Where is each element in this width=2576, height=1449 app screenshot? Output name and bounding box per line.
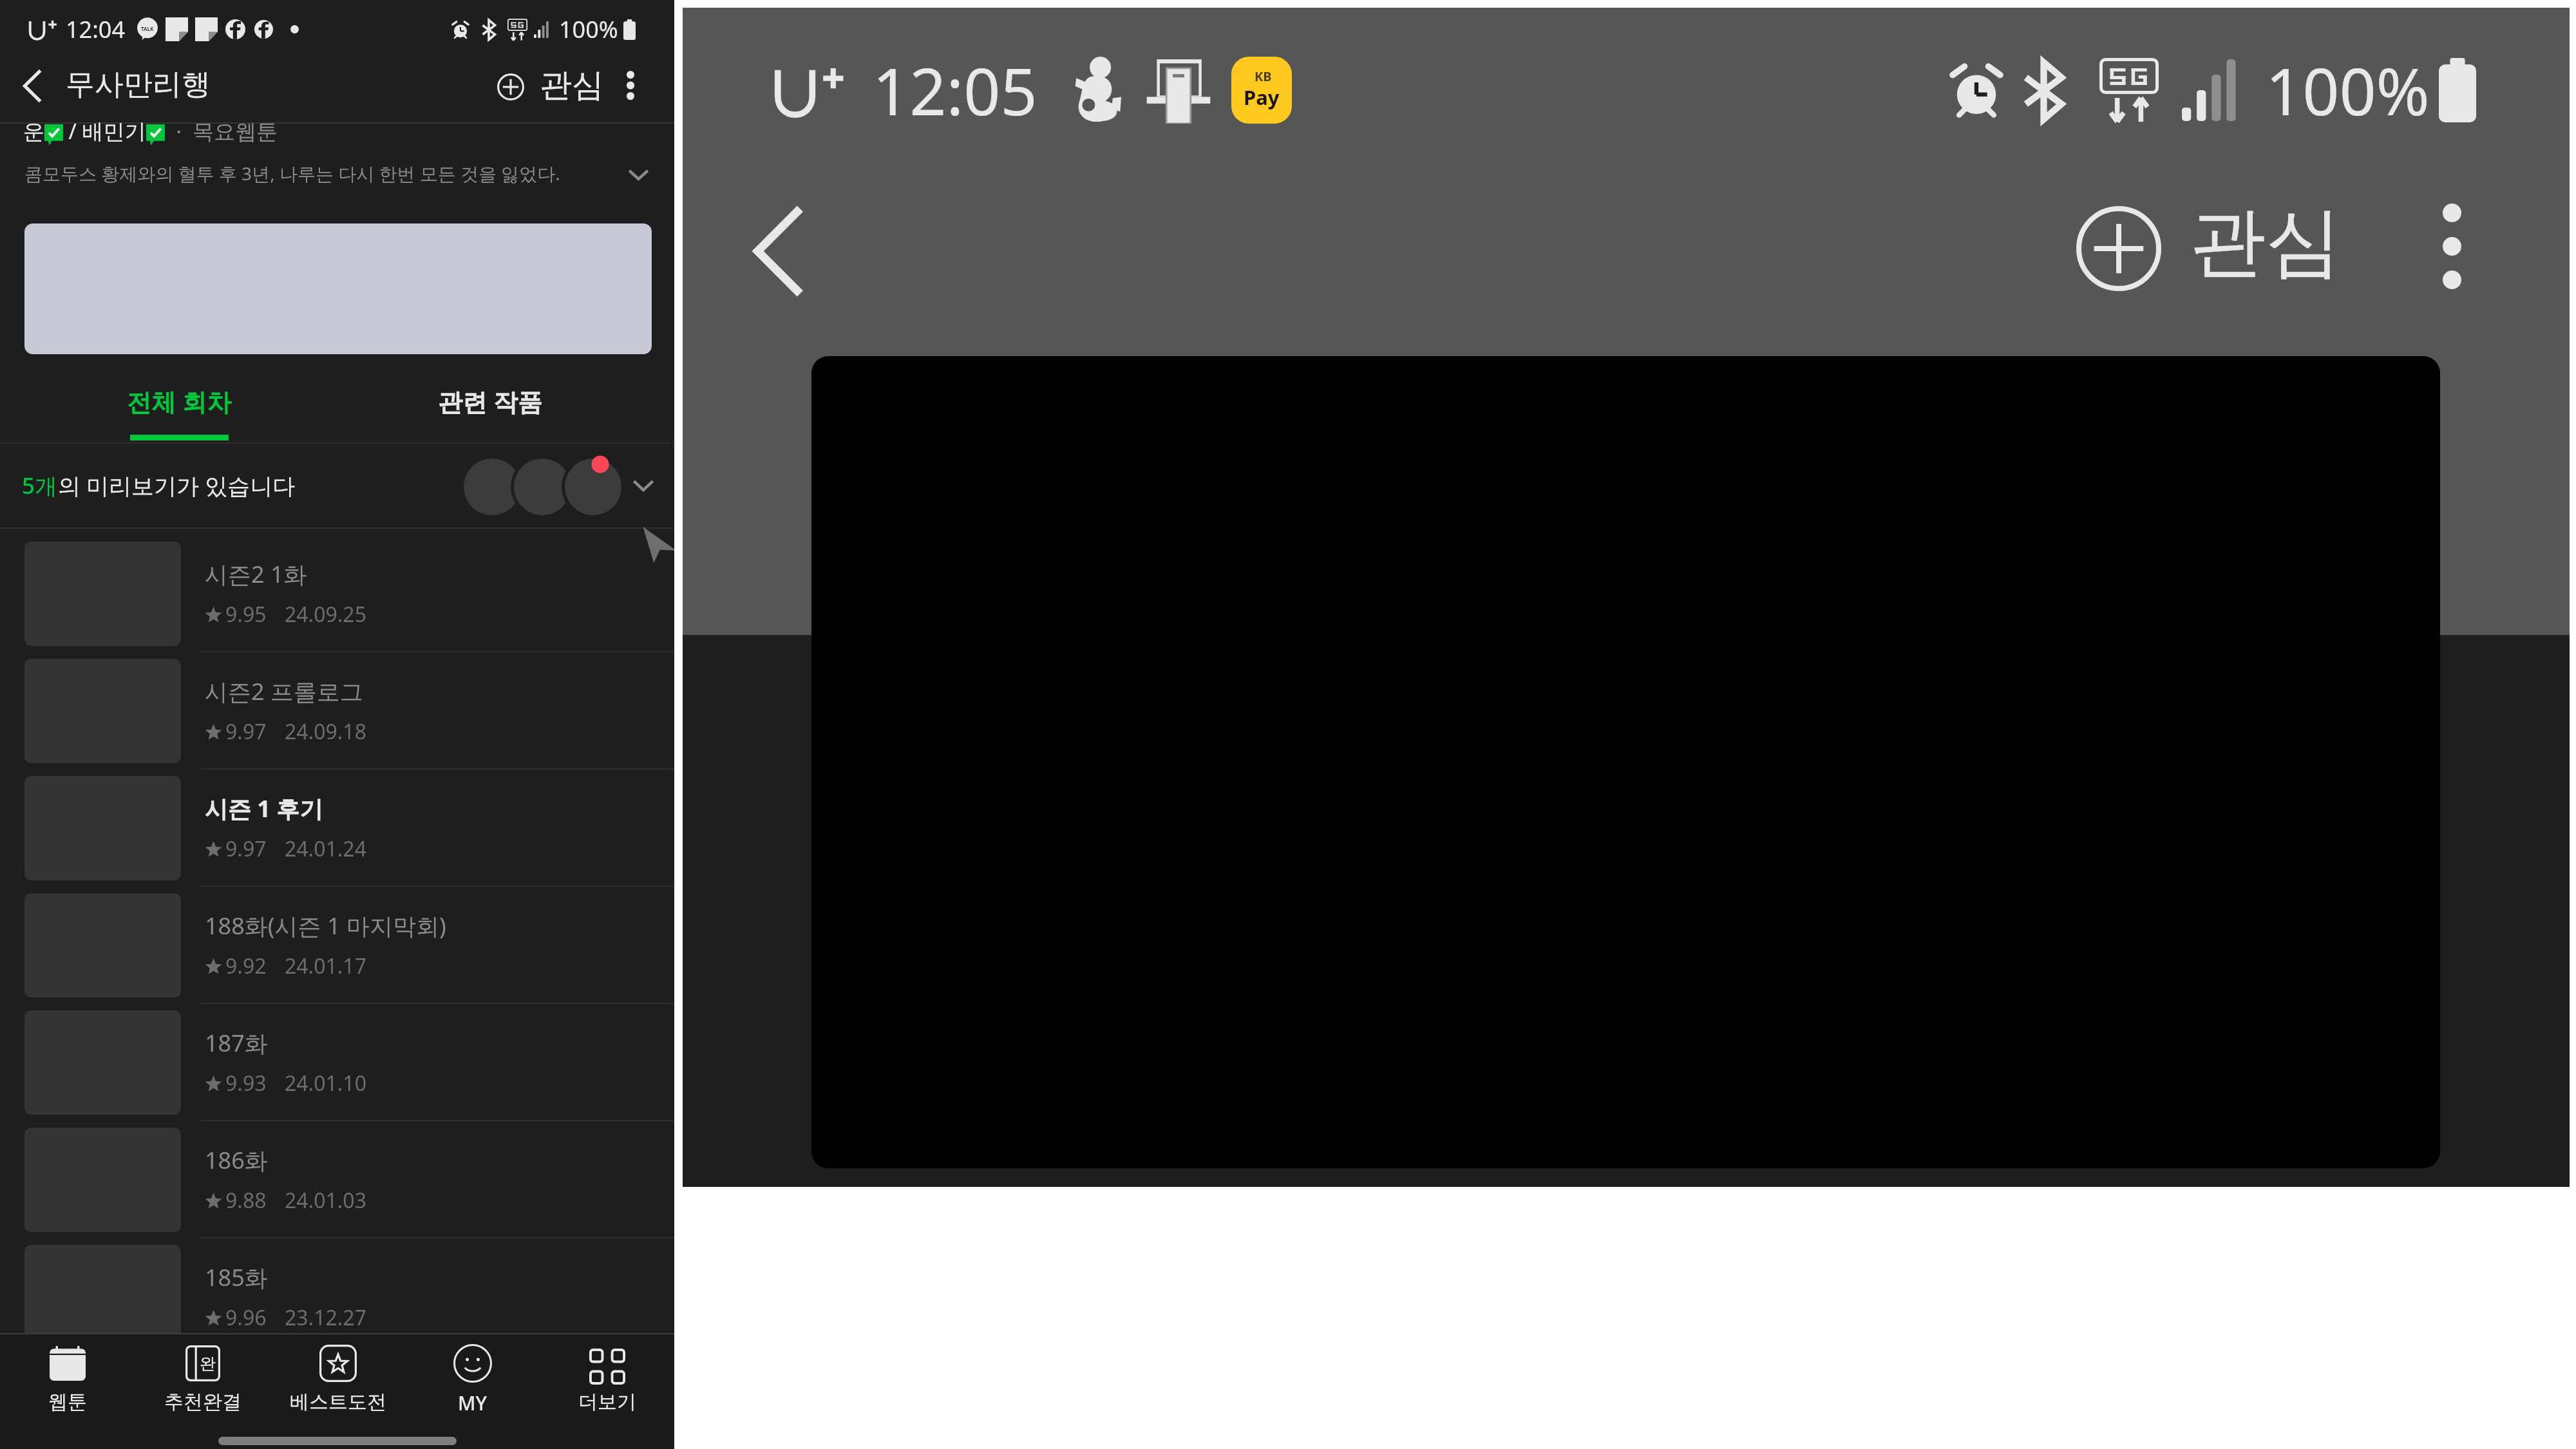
button[interactable]: 관심 [487,61,614,119]
staticText: TALK [141,25,154,32]
staticText: 관심 [540,65,604,106]
button[interactable]: 186화 [0,1121,674,1238]
button[interactable]: 시즌2 1화 [0,535,674,652]
button[interactable]: 185화 [0,1238,674,1356]
staticText: 188화(시즌 1 마지막회) [205,910,446,942]
staticText: 23.12.27 [285,1303,366,1332]
staticText: 9.92 [225,952,267,980]
button[interactable]: Back [705,177,853,325]
staticText: 186화 [205,1144,268,1176]
button[interactable]: 완 [135,1343,270,1414]
staticText: 운 [23,118,44,146]
staticText: 24.01.17 [285,952,366,980]
button[interactable]: 188화(시즌 1 마지막회) [0,887,674,1004]
staticText: 12:05 [873,46,1037,134]
staticText: 전체 회차 [127,384,231,418]
staticText: 5개 [22,470,58,501]
staticText: MY [458,1390,488,1416]
button[interactable]: More options [607,52,654,118]
staticText: 24.01.24 [285,835,366,863]
staticText: 9.97 [225,717,267,746]
staticText: 관심 [2190,194,2342,290]
staticText: 무사만리행 [66,66,211,103]
button[interactable]: Promotion banner [24,223,652,354]
staticText: 콤모두스 황제와의 혈투 후 3년, 나루는 다시 한번 모든 것을 잃었다. [24,161,560,185]
staticText: 187화 [205,1027,268,1059]
staticText: 시즌 1 후기 [205,793,323,824]
staticText: 9.97 [225,835,267,863]
button[interactable]: 시즌 1 후기 [0,770,674,887]
button[interactable]: Expand description [611,147,665,202]
button[interactable]: 더보기 [540,1343,674,1414]
staticText: 100% [2266,46,2430,134]
staticText: 더보기 [578,1390,636,1414]
staticText: / 배민기 [63,117,146,146]
staticText: 9.88 [225,1186,267,1215]
staticText: 9.95 [225,600,267,629]
staticText: 완 [200,1354,216,1374]
staticText: 웹툰 [48,1390,87,1414]
button[interactable]: 187화 [0,1004,674,1121]
button[interactable]: 웹툰 [0,1343,135,1414]
staticText: 185화 [205,1262,268,1293]
staticText: 시즌2 프롤로그 [205,676,363,707]
staticText: 의 미리보기가 있습니다 [58,470,296,501]
staticText: 24.01.03 [285,1186,366,1215]
staticText: 시즌2 1화 [205,558,307,590]
staticText: 12:04 [66,14,126,45]
staticText: 100% [559,14,618,45]
button[interactable]: 관심 [2048,180,2409,317]
staticText: 9.96 [225,1303,267,1332]
button[interactable]: 베스트도전 [270,1343,405,1414]
staticText: 9.93 [225,1069,267,1097]
staticText: 추천완결 [164,1390,241,1414]
button[interactable]: Back [3,53,62,118]
staticText: Pay [1244,84,1280,111]
staticText: 24.09.18 [285,717,366,746]
staticText: KB [1255,68,1272,85]
staticText: 베스트도전 [290,1390,386,1414]
staticText: · 목요웹툰 [165,117,278,146]
button[interactable]: MY [405,1343,540,1416]
button[interactable]: 5개 [0,444,674,527]
button[interactable]: More options [2400,153,2503,339]
staticText: 관련 작품 [438,384,542,418]
staticText: 24.01.10 [285,1069,366,1097]
button[interactable]: 관련 작품 [337,357,674,442]
staticText: 24.09.25 [285,600,366,629]
button[interactable]: 시즌2 프롤로그 [0,652,674,770]
button[interactable]: 전체 회차 [0,357,337,442]
